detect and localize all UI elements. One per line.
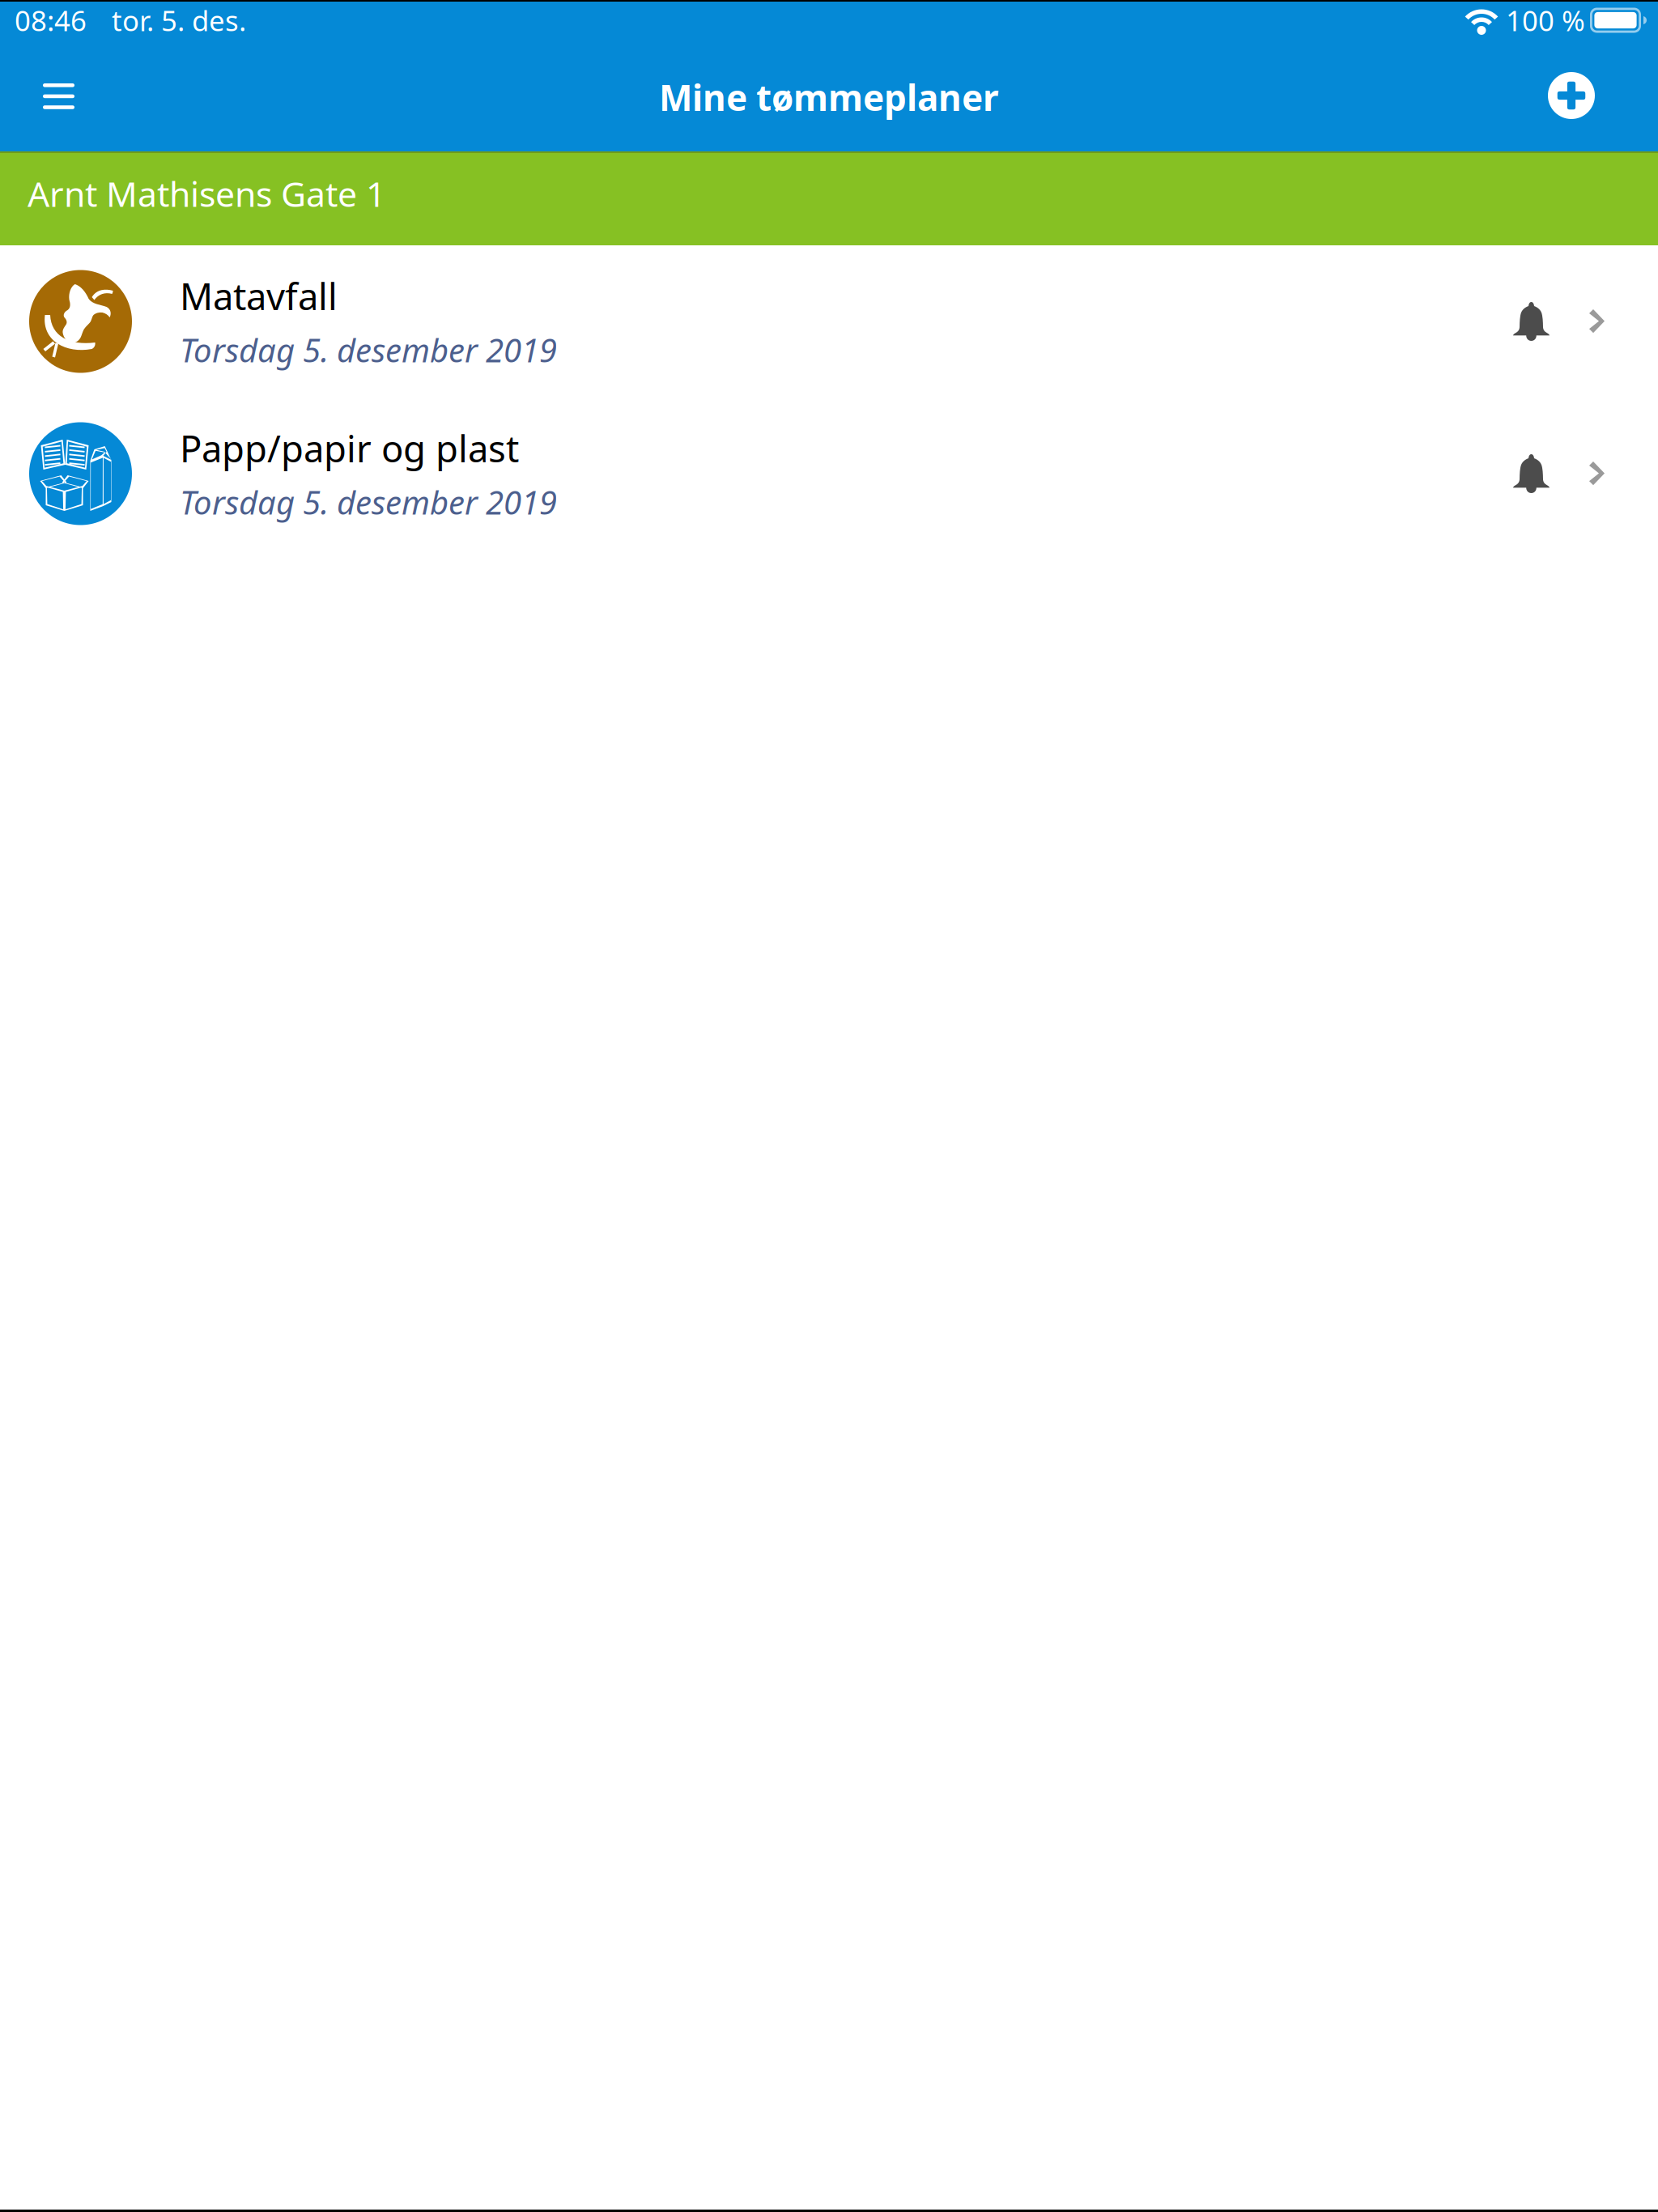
staticText: Arnt Mathisens Gate 1 [28,171,385,217]
staticText: 100 % [1506,2,1585,39]
staticText: Torsdag 5. desember 2019 [180,481,557,524]
button[interactable]: Papp/papir og plast [0,398,1658,550]
button[interactable]: Add [1509,48,1658,152]
staticText: Torsdag 5. desember 2019 [180,328,557,371]
staticText: Matavfall [180,271,338,320]
staticText: Mine tømmeplaner [659,74,999,121]
staticText: Papp/papir og plast [180,424,519,472]
staticText: tor. 5. des. [112,2,246,39]
button[interactable]: Matavfall [0,245,1658,398]
staticText: 08:46 [15,2,87,39]
button[interactable]: Menu [0,48,113,152]
